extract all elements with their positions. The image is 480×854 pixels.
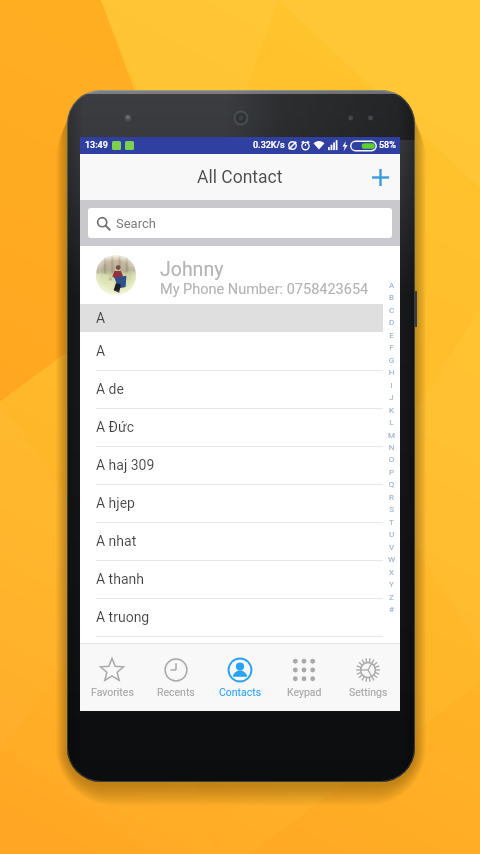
staticText: All Contact <box>197 167 283 188</box>
staticText: A thanh <box>96 571 144 587</box>
staticText: P <box>385 468 398 477</box>
button[interactable]: Keypad <box>272 644 336 711</box>
staticText: L <box>385 418 398 427</box>
button[interactable]: A <box>80 332 383 370</box>
staticText: S <box>385 505 398 514</box>
staticText: A <box>96 310 106 326</box>
staticText: 58% <box>379 140 396 151</box>
staticText: Settings <box>349 686 388 698</box>
staticText: Q <box>385 480 398 489</box>
staticText: Keypad <box>287 686 322 698</box>
staticText: J <box>385 393 398 402</box>
button[interactable]: A nhat <box>80 522 383 560</box>
staticText: # <box>385 605 398 614</box>
staticText: X <box>385 568 398 577</box>
staticText: Z <box>385 593 398 602</box>
button[interactable]: Johnny <box>80 246 383 304</box>
staticText: A truong <box>96 609 150 625</box>
button[interactable]: A Đức <box>80 408 383 446</box>
staticText: V <box>385 543 398 552</box>
staticText: 0.32K/s <box>253 140 285 151</box>
staticText: I <box>385 381 398 390</box>
staticText: A <box>96 343 106 359</box>
staticText: Contacts <box>219 686 262 698</box>
staticText: A haj 309 <box>96 457 155 473</box>
staticText: 13:49 <box>85 140 108 151</box>
staticText: K <box>385 406 398 415</box>
staticText: R <box>385 493 398 502</box>
button[interactable]: A haj 309 <box>80 446 383 484</box>
button[interactable]: Contacts <box>208 644 272 711</box>
button[interactable]: A <box>80 304 383 332</box>
button[interactable]: Favorites <box>80 644 144 711</box>
staticText: A Đức <box>96 419 134 435</box>
staticText: Johnny <box>160 258 224 281</box>
button[interactable]: A thanh <box>80 560 383 598</box>
staticText: Favorites <box>91 686 134 698</box>
staticText: H <box>385 368 398 377</box>
staticText: T <box>385 518 398 527</box>
staticText: G <box>385 356 398 365</box>
staticText: Recents <box>157 686 195 698</box>
button[interactable]: Recents <box>144 644 208 711</box>
staticText: My Phone Number: 0758423654 <box>160 281 369 298</box>
button[interactable]: Search <box>88 208 392 238</box>
staticText: N <box>385 443 398 452</box>
staticText: A <box>385 281 398 290</box>
button[interactable]: Settings <box>336 644 400 711</box>
staticText: D <box>385 318 398 327</box>
staticText: O <box>385 455 398 464</box>
staticText: B <box>385 293 398 302</box>
staticText: U <box>385 530 398 539</box>
button[interactable]: Add contact <box>357 154 403 200</box>
staticText: E <box>385 331 398 340</box>
staticText: Search <box>116 216 156 231</box>
staticText: A de <box>96 381 124 397</box>
staticText: W <box>385 555 398 564</box>
button[interactable]: A de <box>80 370 383 408</box>
staticText: Y <box>385 580 398 589</box>
staticText: A nhat <box>96 533 137 549</box>
staticText: A hjep <box>96 495 135 511</box>
button[interactable]: A truong <box>80 598 383 636</box>
staticText: F <box>385 343 398 352</box>
button[interactable]: A hjep <box>80 484 383 522</box>
staticText: M <box>385 431 398 440</box>
staticText: C <box>385 306 398 315</box>
